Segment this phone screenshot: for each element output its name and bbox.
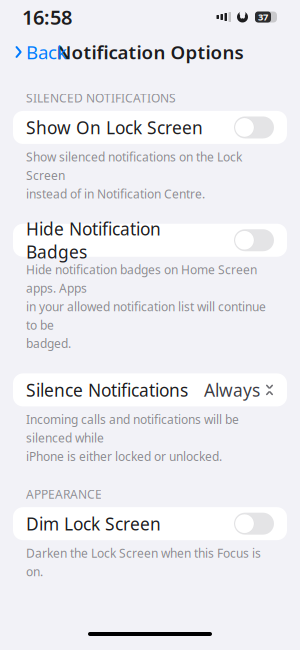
staticText: APPEARANCE [26,486,102,502]
button[interactable]: Show On Lock Screen [13,111,287,144]
button[interactable]: Dim Lock Screen [13,507,287,540]
staticText: Always [204,378,260,401]
staticText: Hide Notification Badges [26,217,161,263]
staticText: Back [26,40,67,64]
staticText: Darken the Lock Screen when this Focus i… [26,545,261,580]
staticText: Show On Lock Screen [26,116,203,139]
staticText: Notification Options [56,40,243,64]
button[interactable]: Back [10,34,71,70]
staticText: 16:58 [22,4,72,30]
staticText: 37 [258,11,268,23]
staticText: SILENCED NOTIFICATIONS [26,90,176,106]
staticText: Show silenced notifications on the Lock … [26,149,242,202]
button[interactable]: Hide Notification Badges [13,224,287,257]
staticText: Incoming calls and notifications will be… [26,411,239,464]
staticText: Dim Lock Screen [26,512,161,535]
staticText: Silence Notifications [26,378,188,401]
staticText: Hide notification badges on Home Screen … [26,262,266,351]
button[interactable]: Silence Notifications [13,373,287,406]
